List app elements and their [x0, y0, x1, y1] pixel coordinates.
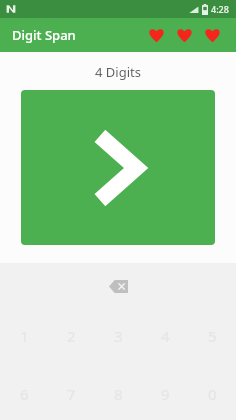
staticText: 5 [208, 326, 217, 343]
button[interactable]: Life 1 [142, 20, 170, 50]
staticText: 0 [208, 384, 217, 401]
staticText: 4:28 [211, 3, 229, 15]
staticText: 2 [67, 326, 76, 343]
staticText: 6 [20, 384, 29, 401]
staticText: 1 [20, 326, 29, 343]
staticText: 4 Digits [0, 63, 236, 81]
staticText: 8 [114, 384, 123, 401]
staticText: Digit Span [12, 26, 76, 44]
staticText: 7 [67, 384, 76, 401]
button[interactable]: Next [21, 90, 215, 245]
button[interactable]: Life 3 [198, 20, 226, 50]
staticText: 3 [114, 326, 123, 343]
staticText: 4 [161, 326, 170, 343]
staticText: 9 [161, 384, 170, 401]
button[interactable]: Life 2 [170, 20, 198, 50]
button[interactable]: Backspace [101, 274, 135, 298]
